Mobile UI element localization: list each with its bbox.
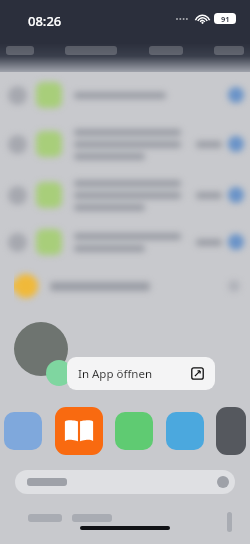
button[interactable]: Bücher [55, 407, 103, 455]
staticText: 08:26 [28, 12, 62, 30]
staticText: 91 [221, 14, 230, 24]
button[interactable]: In App öffnen [67, 357, 215, 390]
staticText: In App öffnen [78, 366, 153, 382]
